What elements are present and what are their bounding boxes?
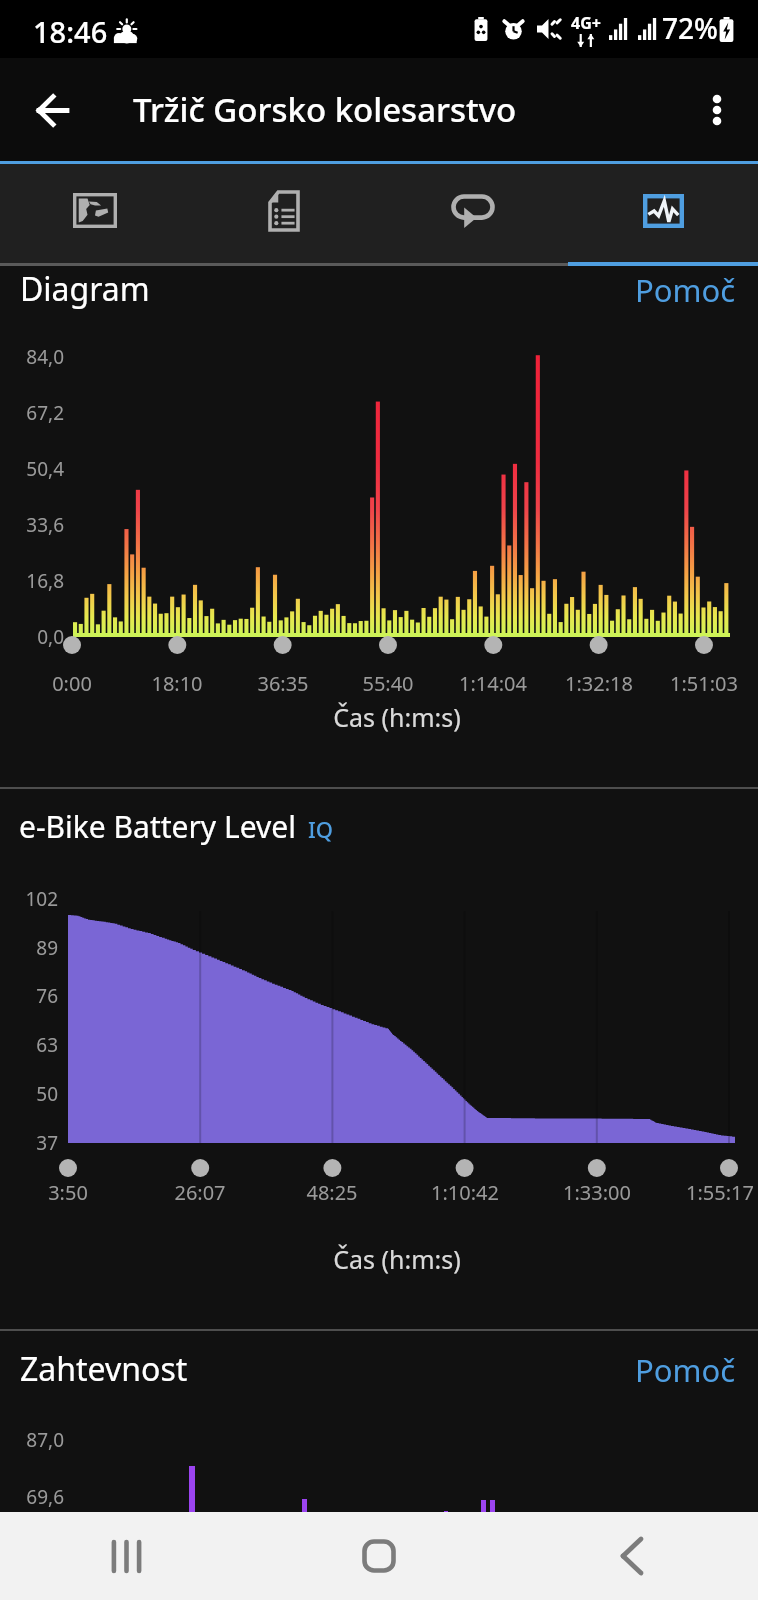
staticText: 55:40 <box>328 670 448 697</box>
button[interactable]: More options <box>687 80 747 140</box>
staticText: 0,0 <box>37 624 64 650</box>
button[interactable]: Pomoč <box>623 261 748 319</box>
staticText: 26:07 <box>130 1179 270 1206</box>
staticText: Zahtevnost <box>20 1347 188 1391</box>
staticText: 50 <box>36 1081 58 1107</box>
staticText: Čas (h:m:s) <box>277 1242 517 1276</box>
staticText: 102 <box>25 886 58 912</box>
button[interactable]: Navigate up <box>21 79 83 141</box>
staticText: IQ <box>308 814 334 844</box>
staticText: 3:50 <box>0 1179 138 1206</box>
button[interactable]: Map <box>0 164 189 263</box>
button[interactable]: Pomoč <box>623 1341 748 1399</box>
staticText: Čas (h:m:s) <box>277 700 517 734</box>
staticText: 1:14:04 <box>433 670 553 697</box>
staticText: e-Bike Battery Level <box>19 806 296 847</box>
staticText: Pomoč <box>635 269 736 311</box>
staticText: 84,0 <box>26 344 64 370</box>
staticText: Tržič Gorsko kolesarstvo <box>133 87 517 132</box>
staticText: Pomoč <box>635 1349 736 1391</box>
staticText: 72% <box>662 9 718 47</box>
staticText: 67,2 <box>26 400 64 426</box>
staticText: 63 <box>36 1032 58 1058</box>
staticText: 1:51:03 <box>644 670 758 697</box>
staticText: 1:55:17 <box>650 1179 758 1206</box>
staticText: 69,6 <box>26 1484 64 1510</box>
staticText: 1:10:42 <box>395 1179 535 1206</box>
staticText: 50,4 <box>26 456 64 482</box>
staticText: 76 <box>36 983 58 1009</box>
staticText: 37 <box>36 1130 58 1156</box>
button[interactable]: Recents <box>0 1512 252 1600</box>
button[interactable]: Charts <box>568 164 758 263</box>
staticText: 1:33:00 <box>527 1179 667 1206</box>
staticText: 87,0 <box>26 1427 64 1453</box>
staticText: Diagram <box>20 267 150 311</box>
button[interactable]: Back <box>505 1512 758 1600</box>
staticText: 1:32:18 <box>539 670 659 697</box>
staticText: 89 <box>36 935 58 961</box>
button[interactable]: Home <box>252 1512 505 1600</box>
staticText: 33,6 <box>26 512 64 538</box>
button[interactable]: Details <box>189 164 378 263</box>
staticText: 18:46 <box>33 12 108 51</box>
staticText: 0:00 <box>12 670 132 697</box>
staticText: 4G+ <box>571 12 601 34</box>
staticText: 16,8 <box>26 568 64 594</box>
staticText: 48:25 <box>262 1179 402 1206</box>
button[interactable]: Laps <box>378 164 568 263</box>
staticText: 18:10 <box>117 670 237 697</box>
staticText: 36:35 <box>223 670 343 697</box>
